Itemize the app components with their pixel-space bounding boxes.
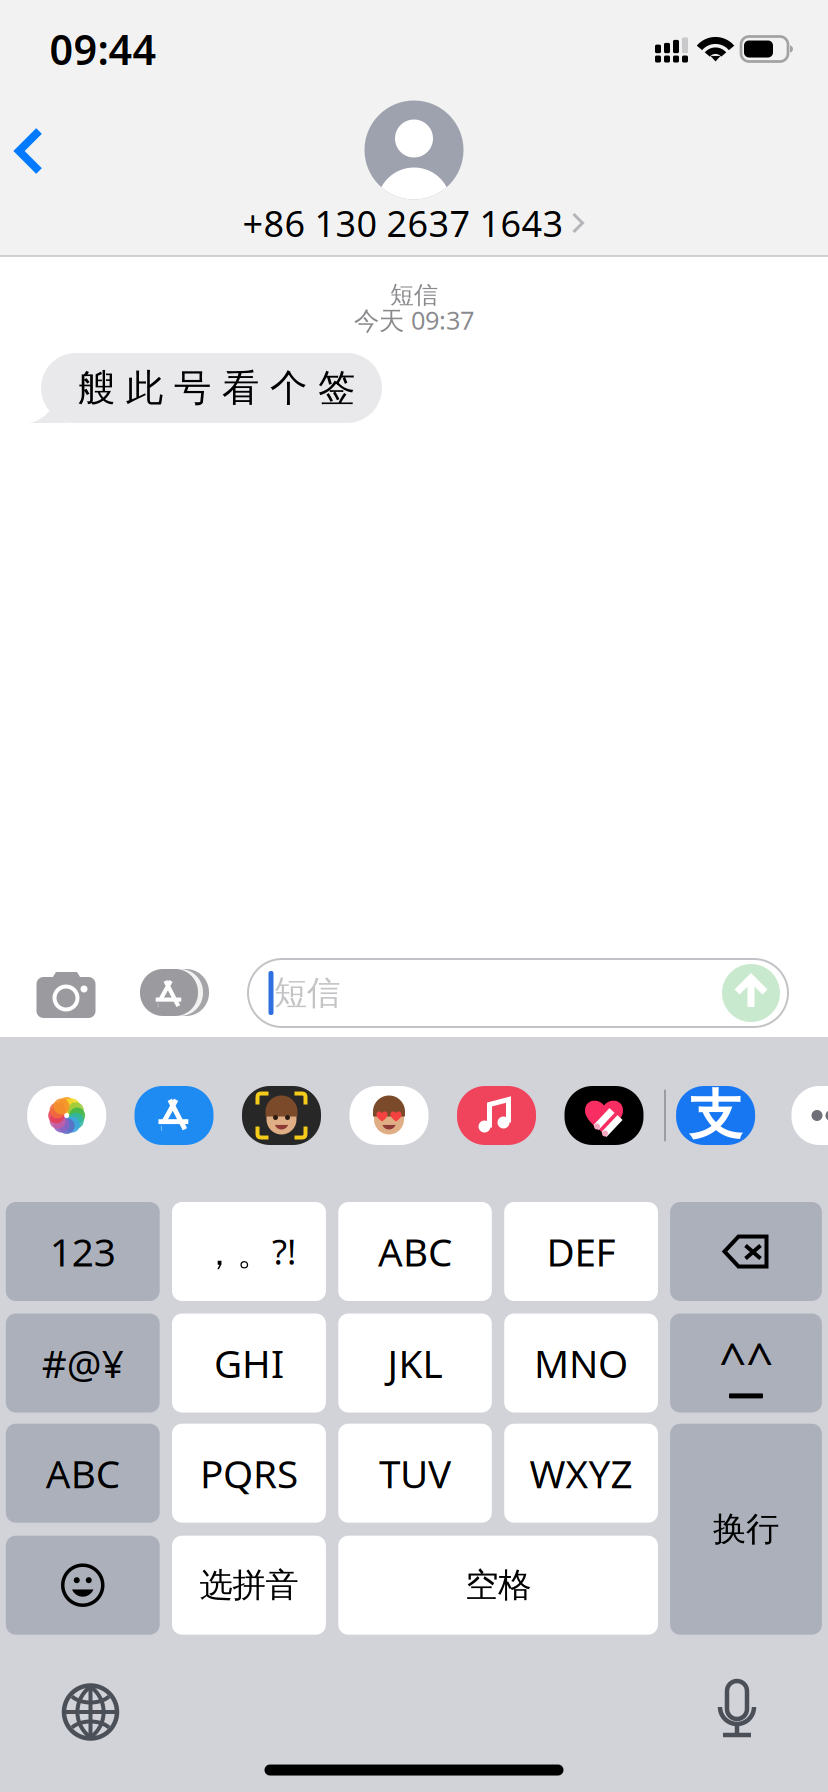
staticText: 123 bbox=[50, 1226, 116, 1277]
staticText: GHI bbox=[214, 1337, 284, 1389]
button[interactable]: iMessage apps bbox=[139, 969, 211, 1016]
staticText: #@¥ bbox=[42, 1337, 124, 1389]
staticText: 艘 此 号 看 个 签 bbox=[78, 365, 355, 411]
staticText: 今天 09:37 bbox=[354, 303, 474, 337]
staticText: ，。?! bbox=[202, 1228, 296, 1275]
button[interactable]: Next keyboard bbox=[64, 1685, 117, 1738]
button[interactable]: Kaomoji bbox=[670, 1313, 822, 1412]
button[interactable]: Photos bbox=[27, 1086, 106, 1145]
button[interactable]: Health bbox=[564, 1086, 643, 1145]
button[interactable]: 选拼音 bbox=[172, 1536, 326, 1635]
button[interactable]: More bbox=[791, 1086, 828, 1145]
staticText: 空格 bbox=[465, 1565, 531, 1606]
staticText: PQRS bbox=[200, 1447, 298, 1499]
staticText: 短信 bbox=[274, 972, 340, 1013]
button[interactable]: Emoji bbox=[6, 1536, 160, 1635]
staticText: 09:44 bbox=[49, 22, 156, 76]
button[interactable]: Music bbox=[457, 1086, 536, 1145]
staticText: TUV bbox=[379, 1447, 451, 1499]
button[interactable]: WXYZ bbox=[504, 1424, 658, 1523]
button[interactable]: Memoji bbox=[242, 1086, 321, 1145]
button[interactable]: MNO bbox=[504, 1313, 658, 1412]
button[interactable]: 123 bbox=[6, 1202, 160, 1301]
button[interactable]: 换行 bbox=[670, 1424, 822, 1635]
button[interactable]: App Store bbox=[134, 1086, 213, 1145]
button[interactable]: Back bbox=[13, 120, 77, 182]
button[interactable]: Memoji stickers bbox=[349, 1086, 428, 1145]
staticText: 选拼音 bbox=[199, 1565, 298, 1606]
button[interactable]: GHI bbox=[172, 1313, 326, 1412]
button[interactable]: Dictation bbox=[718, 1680, 756, 1738]
staticText: DEF bbox=[547, 1226, 616, 1277]
button[interactable]: +86 130 2637 1643 bbox=[264, 100, 564, 250]
button[interactable]: ，。?! bbox=[172, 1202, 326, 1301]
button[interactable]: Camera bbox=[36, 972, 95, 1018]
staticText: 换行 bbox=[713, 1509, 779, 1550]
button[interactable]: 空格 bbox=[338, 1536, 658, 1635]
button[interactable]: JKL bbox=[338, 1313, 492, 1412]
button[interactable]: ABC bbox=[338, 1202, 492, 1301]
staticText: ABC bbox=[46, 1447, 120, 1499]
staticText: WXYZ bbox=[530, 1447, 633, 1499]
button[interactable]: TUV bbox=[338, 1424, 492, 1523]
button[interactable]: ABC bbox=[6, 1424, 160, 1523]
staticText: JKL bbox=[388, 1337, 443, 1389]
staticText: ABC bbox=[378, 1226, 452, 1277]
staticText: ^^ bbox=[719, 1328, 773, 1391]
button[interactable]: Delete bbox=[670, 1202, 822, 1301]
button[interactable]: Send bbox=[722, 964, 780, 1022]
button[interactable]: PQRS bbox=[172, 1424, 326, 1523]
staticText: 短信 bbox=[390, 280, 438, 310]
button[interactable]: DEF bbox=[504, 1202, 658, 1301]
staticText: +86 130 2637 1643 bbox=[242, 199, 563, 247]
button[interactable]: #@¥ bbox=[6, 1313, 160, 1412]
staticText: MNO bbox=[534, 1337, 628, 1389]
staticText: 支 bbox=[689, 1083, 742, 1148]
button[interactable]: Alipay bbox=[676, 1086, 755, 1145]
